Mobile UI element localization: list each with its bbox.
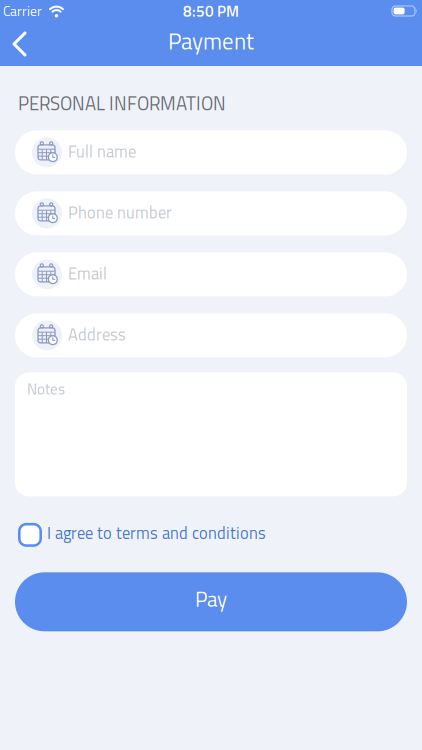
button[interactable]: Back xyxy=(0,22,34,66)
staticText: 8:50 PM xyxy=(183,0,239,23)
button[interactable]: Pay xyxy=(15,572,407,631)
staticText: Carrier xyxy=(3,1,42,21)
button[interactable]: Full name xyxy=(15,130,407,174)
staticText: Email xyxy=(68,261,107,286)
staticText: Full name xyxy=(68,139,136,164)
staticText: Notes xyxy=(27,377,65,400)
button[interactable]: Address xyxy=(15,313,407,357)
staticText: PERSONAL INFORMATION xyxy=(18,89,226,117)
button[interactable]: I agree to terms and conditions xyxy=(15,521,266,546)
staticText: I agree to terms and conditions xyxy=(47,520,266,545)
staticText: Payment xyxy=(168,24,254,58)
staticText: Phone number xyxy=(68,200,172,225)
staticText: Address xyxy=(68,322,126,347)
staticText: Pay xyxy=(195,583,227,615)
button[interactable]: Email xyxy=(15,252,407,296)
button[interactable]: Phone number xyxy=(15,191,407,235)
